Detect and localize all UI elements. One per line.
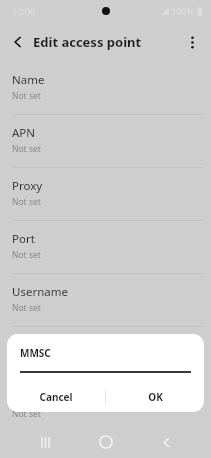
button[interactable]: Back [6, 30, 30, 54]
button[interactable]: OK [106, 382, 204, 412]
staticText: Server [12, 390, 47, 406]
staticText: Port [12, 231, 35, 247]
button[interactable]: More options [180, 30, 204, 54]
staticText: OK [148, 390, 163, 404]
button[interactable]: Back [151, 427, 181, 457]
staticText: Not set [12, 143, 41, 155]
button[interactable]: Home [91, 427, 121, 457]
staticText: Name [12, 72, 45, 88]
button[interactable]: Port [0, 221, 211, 273]
staticText: 10:00 [12, 5, 36, 17]
button[interactable]: Name [0, 62, 211, 114]
button[interactable]: Password [0, 327, 211, 379]
button[interactable]: Server [0, 380, 211, 432]
staticText: MMSC [20, 346, 51, 360]
staticText: Cancel [39, 390, 73, 404]
staticText: Not set [12, 408, 41, 420]
staticText: Password [12, 337, 65, 353]
button[interactable]: Recents [30, 427, 60, 457]
staticText: Not set [12, 90, 41, 102]
button[interactable]: Proxy [0, 168, 211, 220]
staticText: Not set [12, 249, 41, 261]
button[interactable]: Cancel [7, 382, 105, 412]
staticText: APN [12, 125, 36, 141]
staticText: Edit access point [33, 33, 142, 51]
staticText: Username [12, 284, 68, 300]
button[interactable]: Username [0, 274, 211, 326]
staticText: Proxy [12, 178, 43, 194]
staticText: Not set [12, 196, 41, 208]
staticText: Not set [12, 355, 41, 367]
staticText: 100% [171, 5, 195, 17]
button[interactable]: APN [0, 115, 211, 167]
staticText: Not set [12, 302, 41, 314]
